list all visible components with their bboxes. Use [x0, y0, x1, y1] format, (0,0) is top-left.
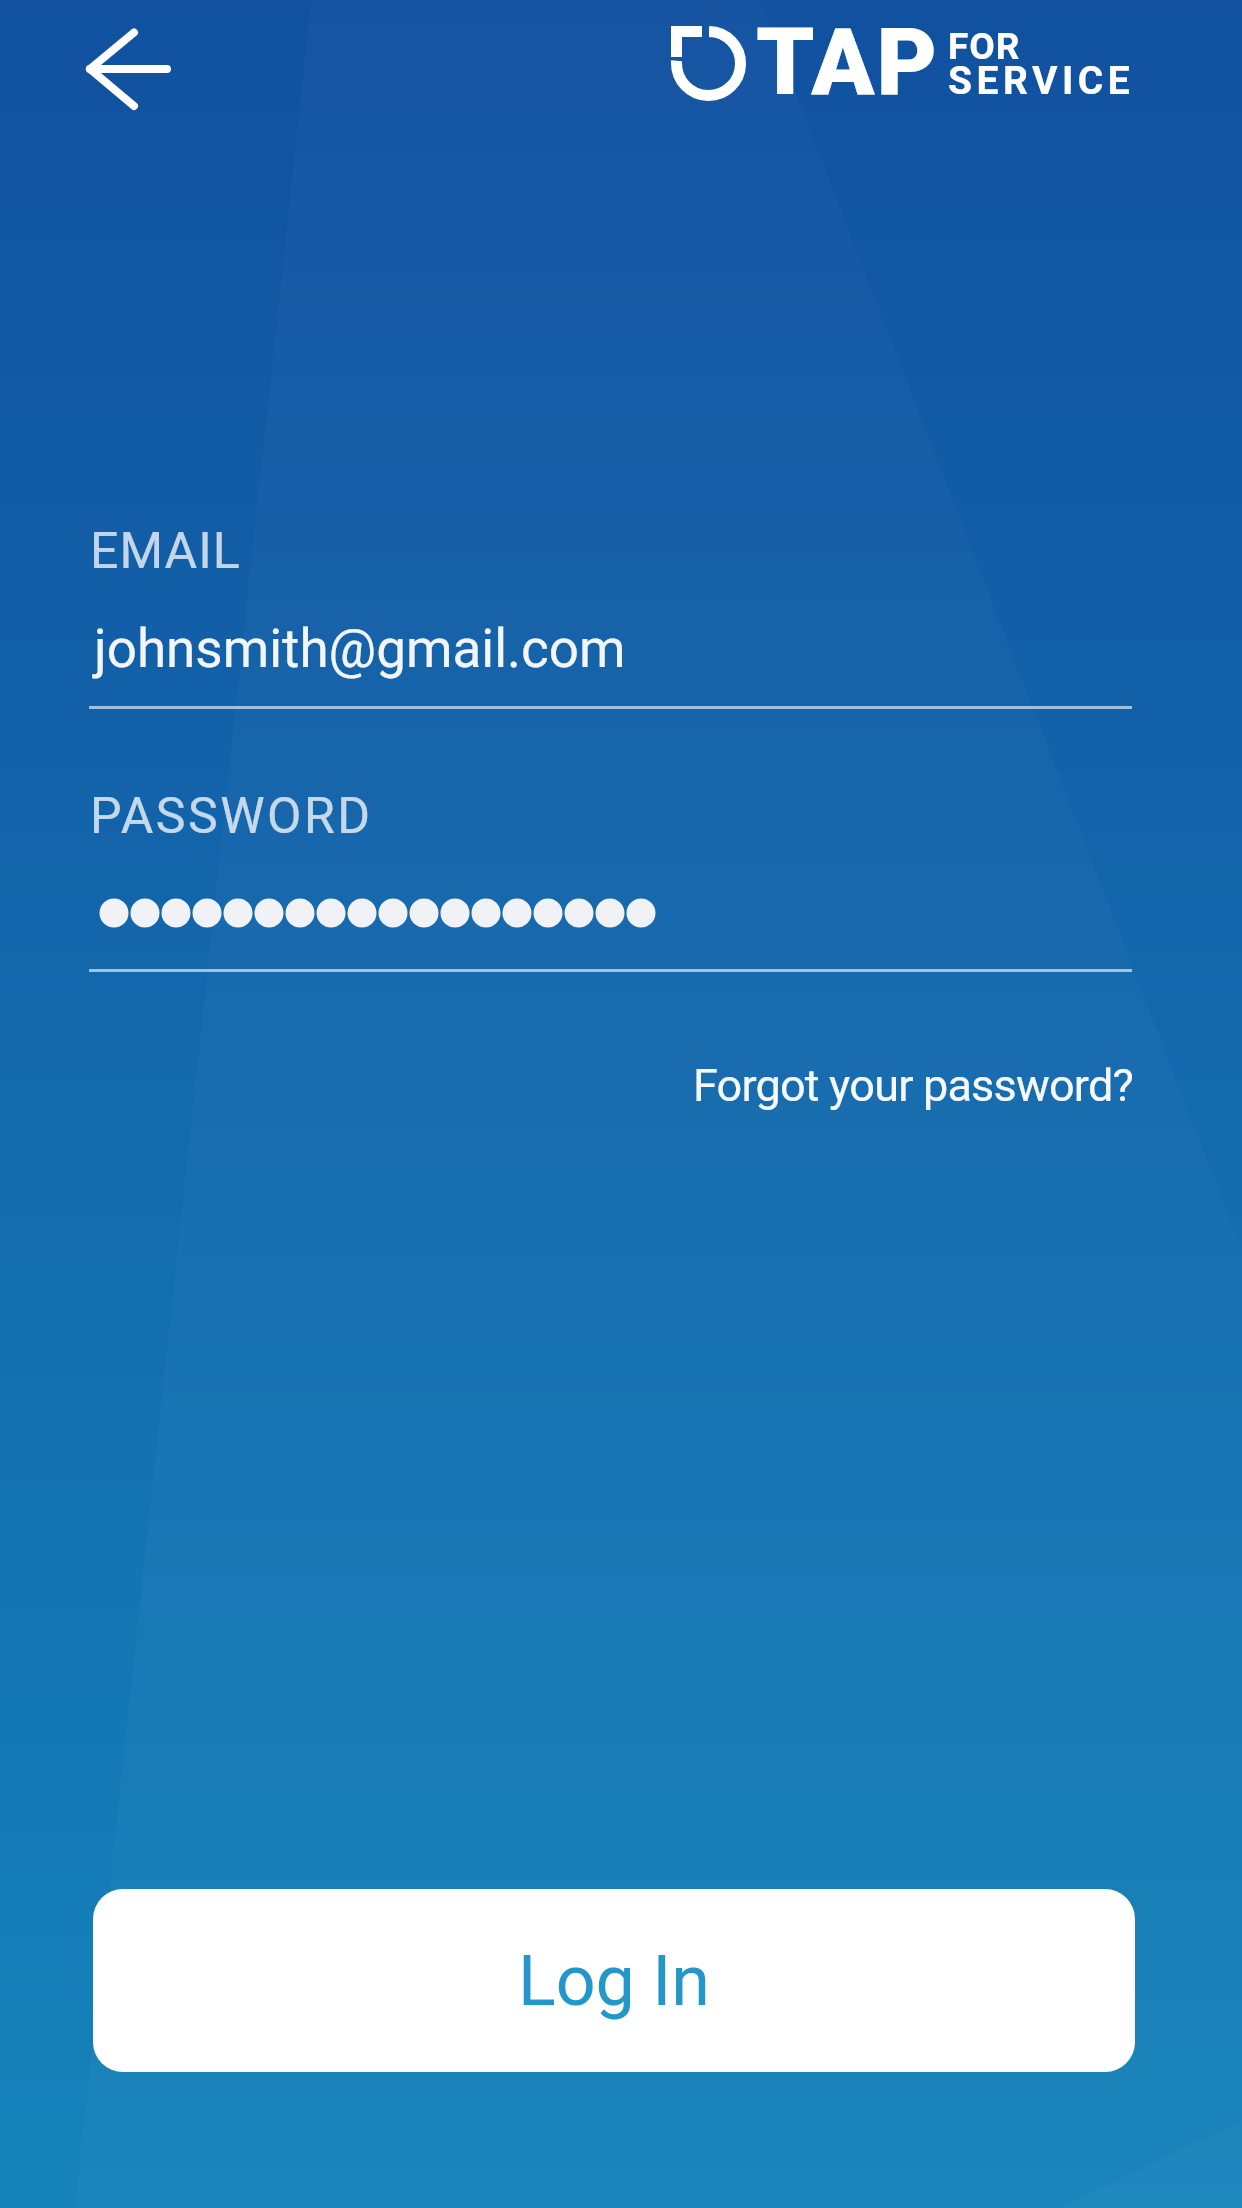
- staticText: johnsmith@gmail.com: [94, 618, 626, 680]
- staticText: TAP: [756, 8, 940, 117]
- staticText: PASSWORD: [90, 787, 373, 846]
- staticText: Forgot your password?: [693, 1059, 1133, 1112]
- button[interactable]: [55, 15, 185, 125]
- staticText: Log In: [518, 1940, 710, 2022]
- staticText: EMAIL: [90, 522, 241, 581]
- button[interactable]: Forgot your password?: [693, 1059, 1133, 1112]
- staticText: SERVICE: [948, 58, 1135, 104]
- button[interactable]: Log In: [93, 1889, 1135, 2072]
- staticText: FOR: [948, 25, 1021, 68]
